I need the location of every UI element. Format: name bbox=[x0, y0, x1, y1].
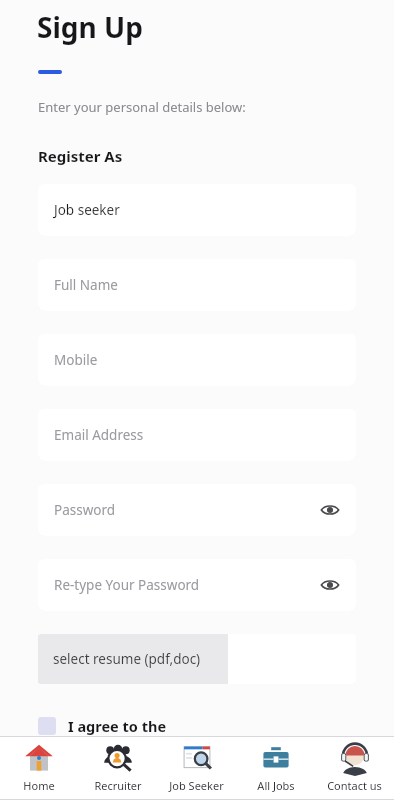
staticText: Password bbox=[54, 501, 116, 519]
button[interactable]: Password bbox=[38, 484, 356, 536]
staticText: Enter your personal details below: bbox=[38, 98, 246, 116]
button[interactable]: Recruiter bbox=[78, 737, 157, 799]
button[interactable]: Show password bbox=[318, 498, 342, 522]
button[interactable]: I agree to the bbox=[38, 716, 356, 736]
staticText: Home bbox=[23, 778, 55, 793]
button[interactable]: Email Address bbox=[38, 409, 356, 461]
button[interactable]: Contact us bbox=[315, 737, 394, 799]
button[interactable]: Job seeker bbox=[38, 184, 356, 236]
button[interactable]: Home bbox=[0, 737, 78, 799]
staticText: Job Seeker bbox=[169, 778, 224, 793]
staticText: Sign Up bbox=[37, 8, 143, 46]
button[interactable]: Job Seeker bbox=[157, 737, 236, 799]
staticText: Mobile bbox=[54, 351, 98, 369]
button[interactable]: Full Name bbox=[38, 259, 356, 311]
button[interactable]: Mobile bbox=[38, 334, 356, 386]
staticText: Register As bbox=[38, 146, 123, 166]
button[interactable]: Show password bbox=[318, 573, 342, 597]
staticText: Contact us bbox=[327, 778, 382, 793]
staticText: All Jobs bbox=[257, 778, 295, 793]
staticText: I agree to the bbox=[68, 716, 167, 736]
staticText: select resume (pdf,doc) bbox=[53, 650, 201, 668]
staticText: Job seeker bbox=[54, 201, 120, 219]
staticText: Full Name bbox=[54, 276, 118, 294]
button[interactable]: All Jobs bbox=[236, 737, 315, 799]
button[interactable]: Re-type Your Password bbox=[38, 559, 356, 611]
staticText: Email Address bbox=[54, 426, 144, 444]
staticText: Recruiter bbox=[94, 778, 142, 793]
button[interactable]: select resume (pdf,doc) bbox=[38, 634, 356, 684]
staticText: Re-type Your Password bbox=[54, 576, 200, 594]
